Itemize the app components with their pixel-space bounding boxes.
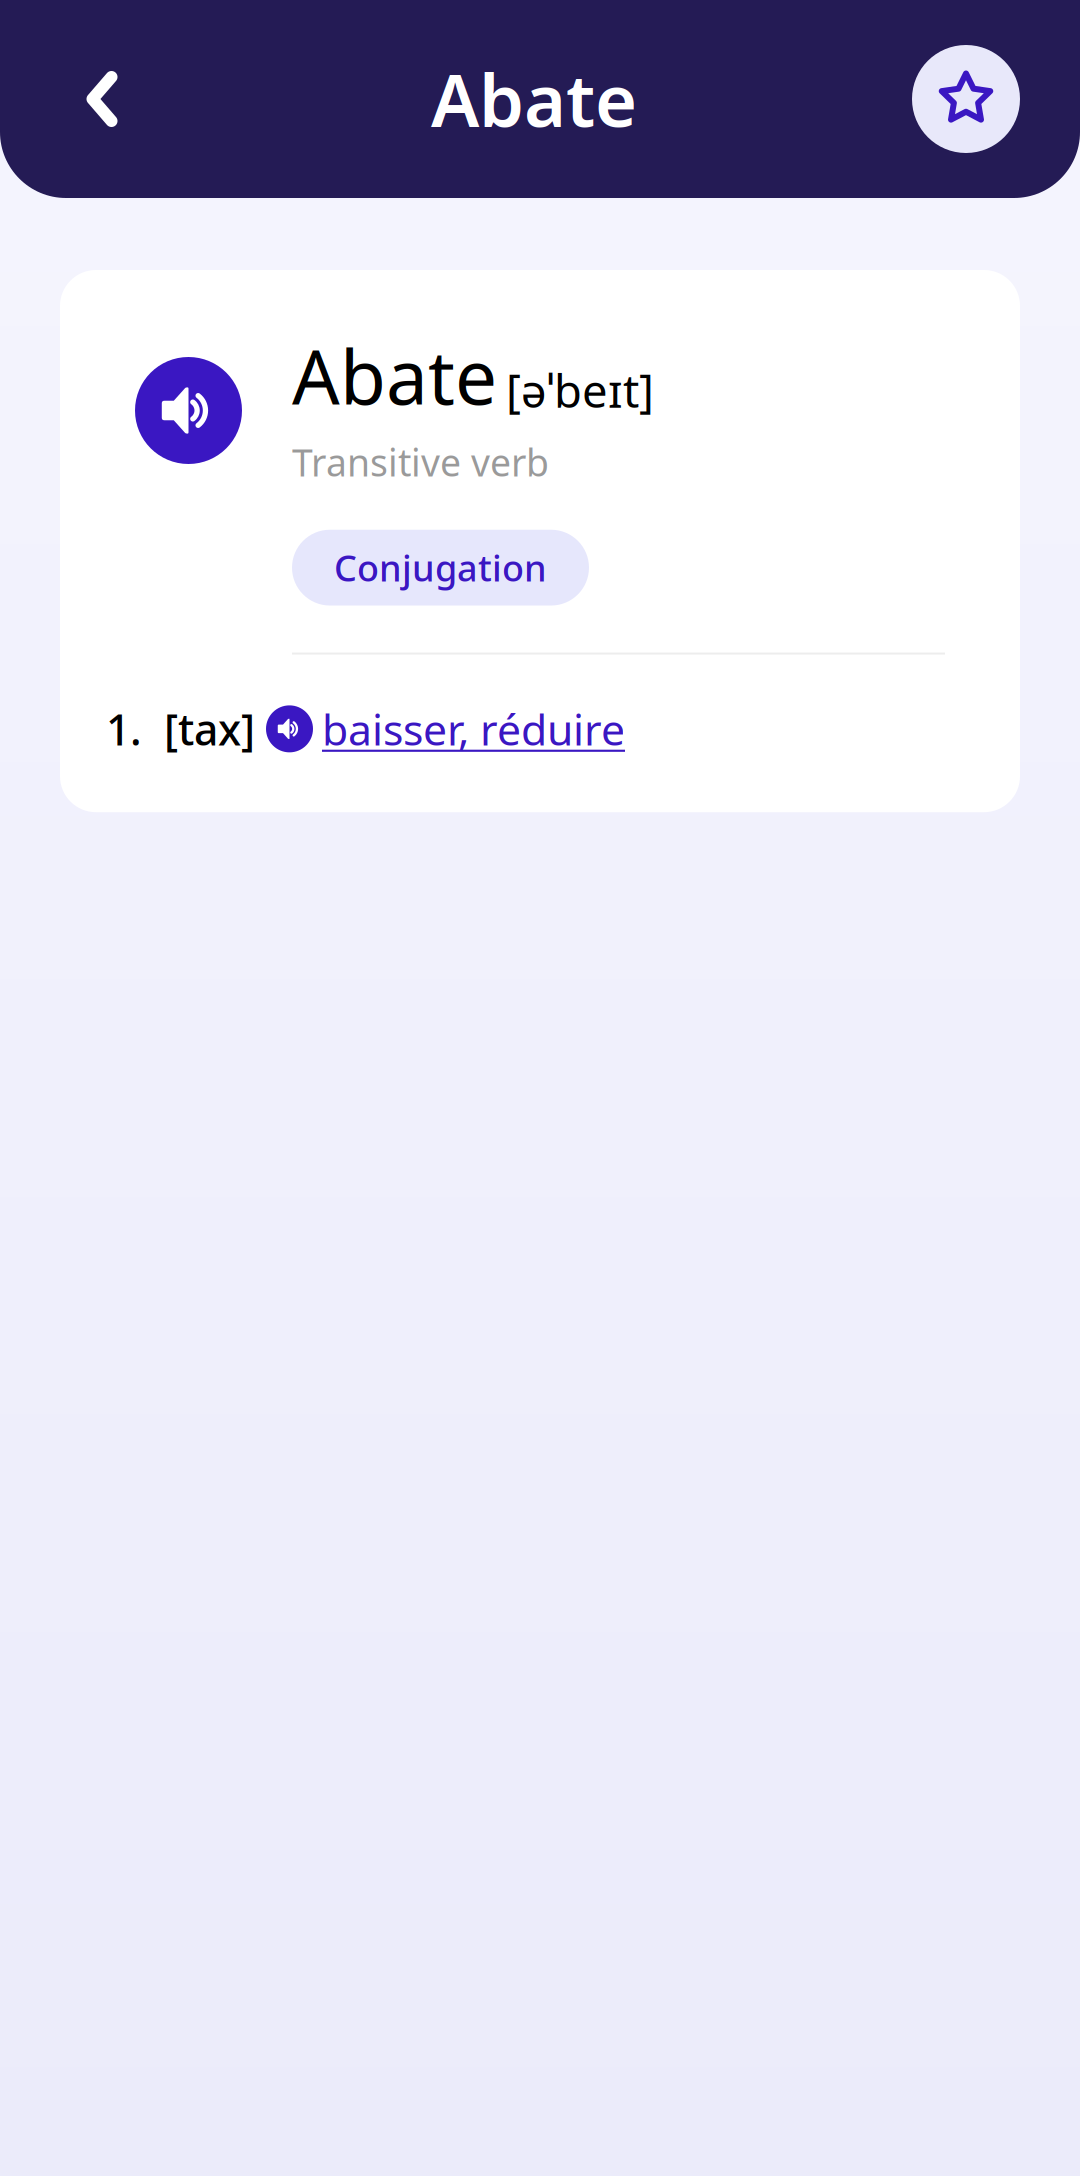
staticText: [əˈbeɪt]	[506, 360, 654, 420]
staticText: Transitive verb	[292, 437, 549, 487]
staticText: [tax]	[164, 700, 255, 757]
staticText: 1.	[106, 700, 142, 757]
button[interactable]: Pronounce baisser, réduire	[266, 705, 313, 752]
button[interactable]: baisser, réduire	[322, 700, 625, 757]
button[interactable]: Pronounce Abate	[135, 357, 242, 464]
staticText: baisser, réduire	[322, 700, 625, 757]
staticText: Conjugation	[334, 544, 547, 591]
button[interactable]: Conjugation	[292, 530, 589, 605]
button[interactable]: Back	[48, 45, 156, 153]
staticText: Abate	[292, 326, 497, 425]
button[interactable]: Add to favorites	[912, 45, 1020, 153]
staticText: Abate	[431, 51, 637, 147]
